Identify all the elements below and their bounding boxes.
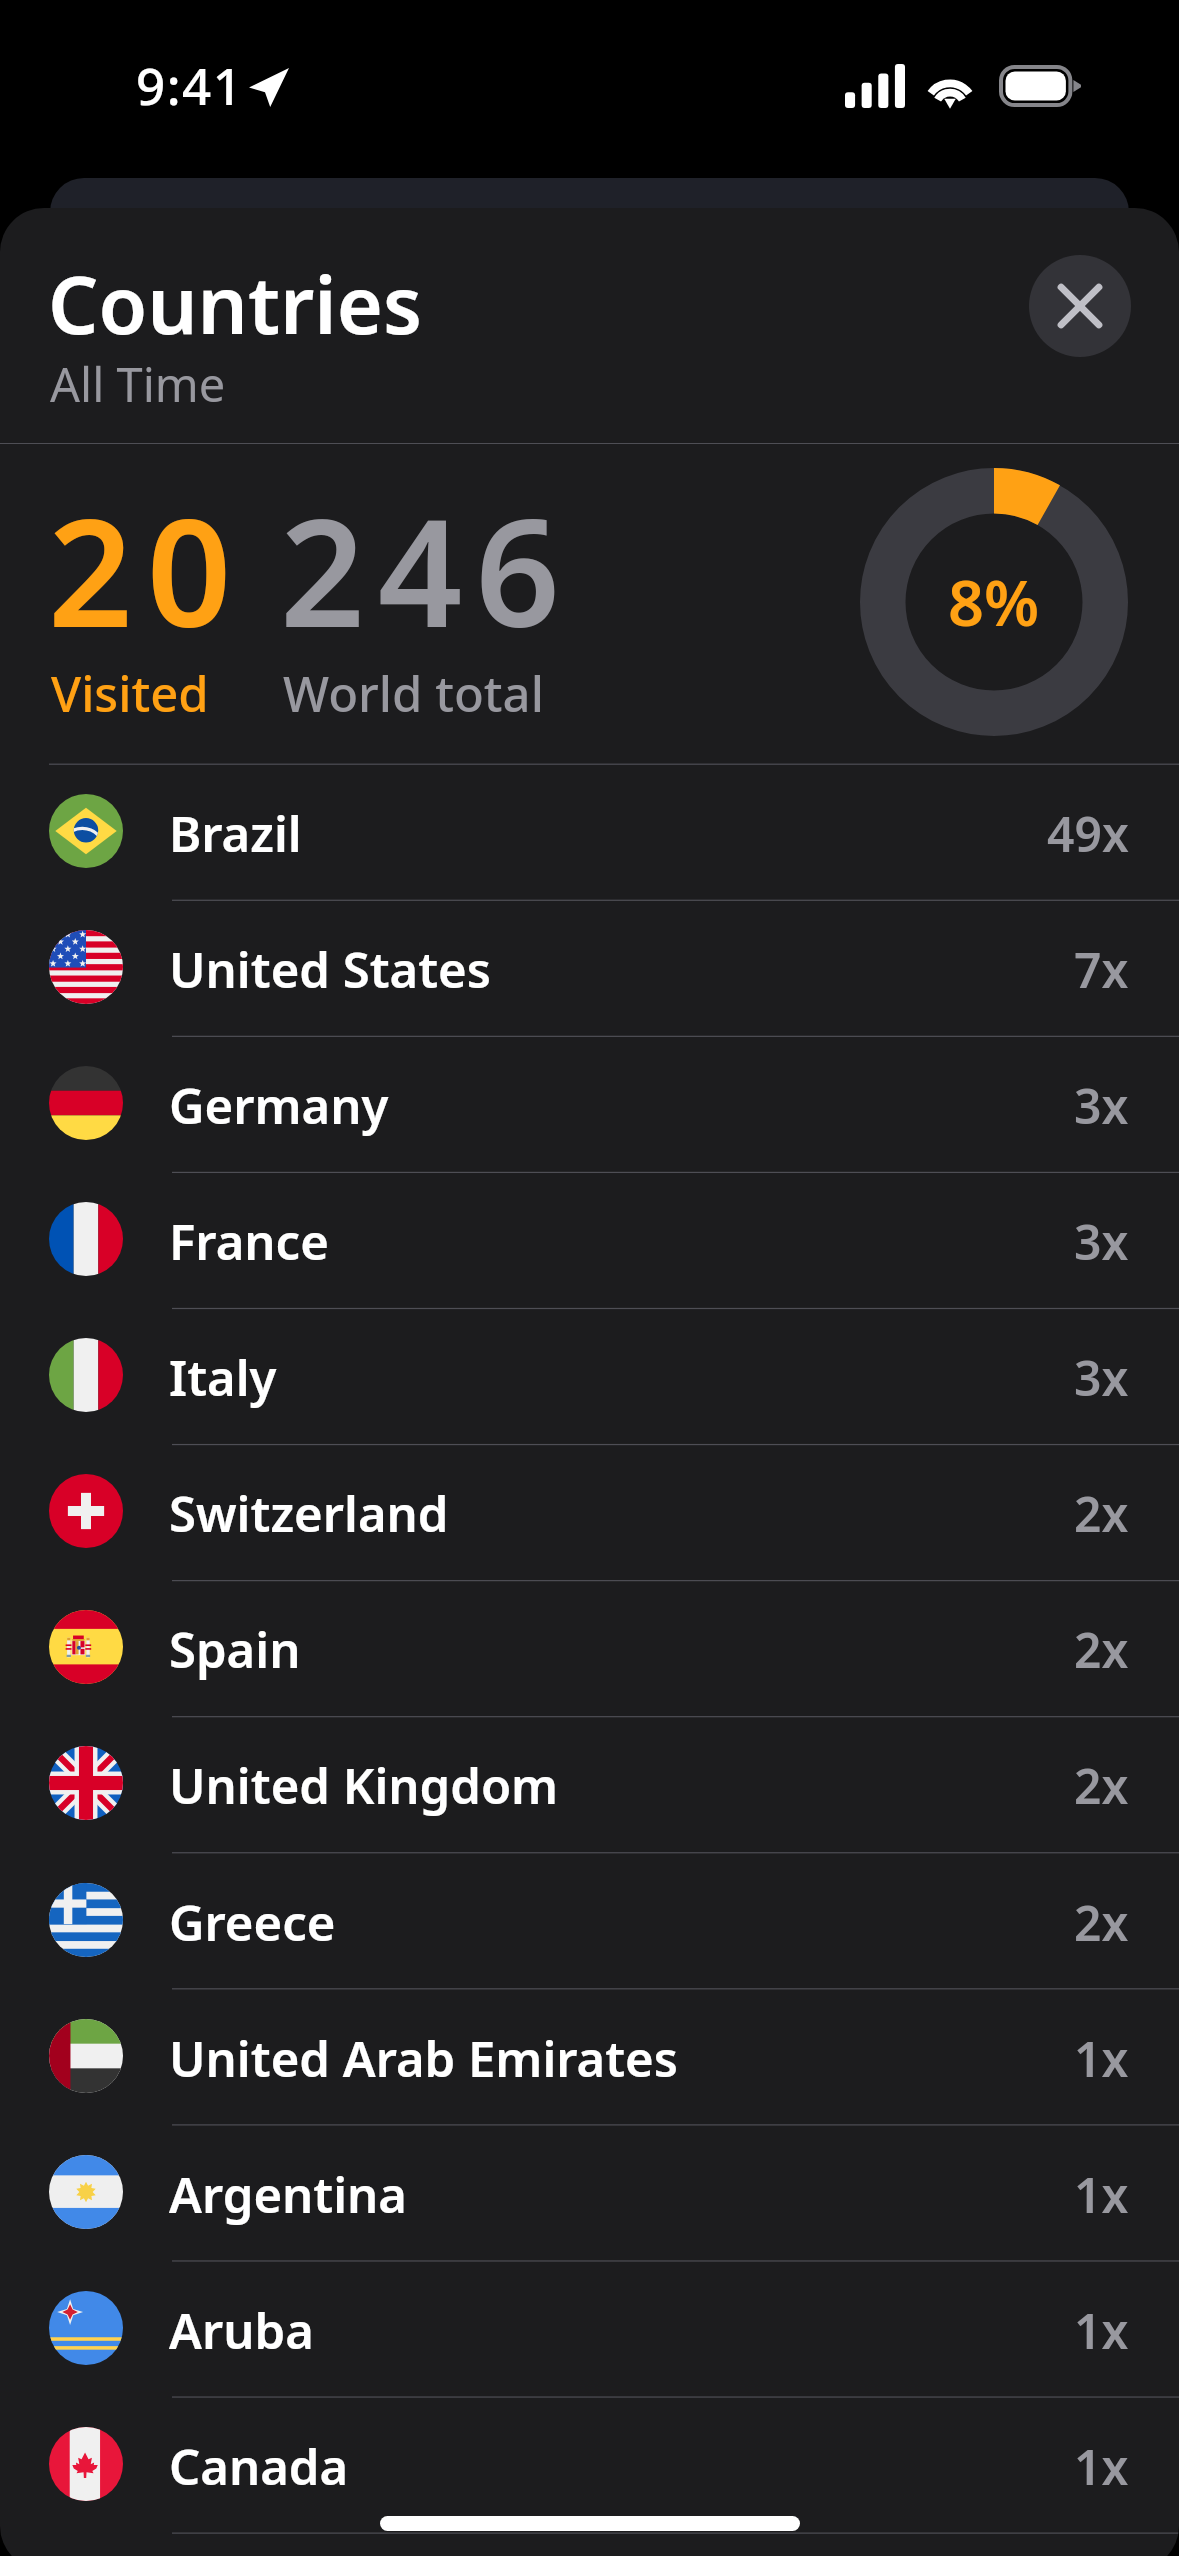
button[interactable]: Germany [0,1035,1179,1171]
staticText: Argentina [169,2161,407,2228]
staticText: 9:41 [136,50,244,119]
staticText: United Arab Emirates [169,2025,678,2092]
staticText: 2x [1074,1617,1129,1682]
staticText: 2x [1074,1890,1129,1955]
button[interactable]: France [0,1171,1179,1307]
staticText: 1x [1074,2026,1129,2091]
staticText: Germany [169,1072,389,1139]
button[interactable]: United States [0,899,1179,1035]
button[interactable]: Close [1029,255,1131,357]
staticText: 3x [1074,1209,1129,1274]
staticText: United States [169,936,491,1003]
button[interactable]: Spain [0,1579,1179,1715]
staticText: Canada [169,2433,349,2500]
button[interactable]: United Arab Emirates [0,1988,1179,2124]
staticText: France [169,1208,329,1275]
staticText: 1x [1074,2298,1129,2363]
staticText: Visited [51,660,209,727]
button[interactable]: Switzerland [0,1443,1179,1579]
staticText: 49x [1047,801,1129,866]
button[interactable]: Argentina [0,2124,1179,2260]
staticText: Italy [169,1344,277,1411]
staticText: United Kingdom [169,1752,559,1819]
button[interactable]: Canada [0,2396,1179,2532]
staticText: Switzerland [169,1480,449,1547]
button[interactable]: Greece [0,1852,1179,1988]
staticText: Greece [169,1889,336,1956]
staticText: World total [283,660,544,727]
staticText: 8% [948,559,1040,645]
button[interactable]: Aruba [0,2260,1179,2396]
staticText: 2x [1074,1481,1129,1546]
button[interactable]: Italy [0,1307,1179,1443]
staticText: 3x [1074,1073,1129,1138]
staticText: 7x [1074,937,1129,1002]
staticText: 20 [48,469,246,671]
staticText: Brazil [169,800,302,867]
button[interactable]: United Kingdom [0,1715,1179,1851]
staticText: Spain [169,1616,301,1683]
staticText: Aruba [169,2297,314,2364]
staticText: 3x [1074,1345,1129,1410]
button[interactable]: Brazil [0,763,1179,899]
staticText: Countries [48,250,422,358]
staticText: 1x [1074,2434,1129,2499]
staticText: 246 [280,469,573,671]
staticText: 1x [1074,2162,1129,2227]
staticText: 2x [1074,1753,1129,1818]
staticText: All Time [50,352,226,416]
